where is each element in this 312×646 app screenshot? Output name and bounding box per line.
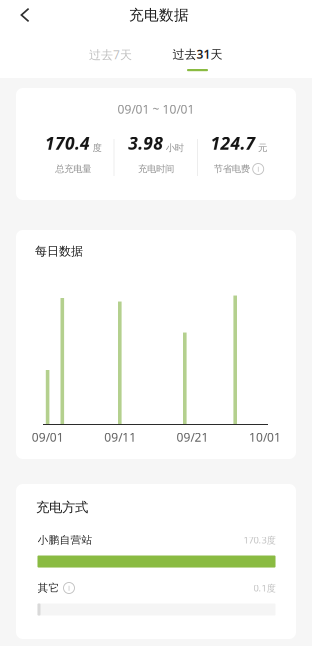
staticText: 充电数据 [129,6,189,24]
staticText: i [257,163,259,174]
staticText: 每日数据 [35,244,83,259]
staticText: 过去31天 [172,46,222,62]
staticText: 充电方式 [36,499,88,515]
staticText: 过去7天 [89,46,132,62]
staticText: 09/11 [104,429,136,445]
staticText: 124.7 [210,131,255,154]
staticText: 小时 [166,142,184,153]
staticText: 总充电量 [55,163,91,175]
button[interactable]: 过去7天 [77,41,143,67]
staticText: 其它 [37,581,59,594]
staticText: 09/01 [32,429,64,445]
staticText: 10/01 [249,429,281,445]
staticText: i [68,582,70,593]
staticText: 3.98 [128,131,163,154]
staticText: 元 [258,142,267,153]
button[interactable]: Back [6,0,44,30]
staticText: 170.3度 [243,534,275,546]
staticText: 小鹏自营站 [37,533,92,546]
staticText: 充电时间 [138,163,174,175]
staticText: 09/01 ~ 10/01 [117,101,194,117]
staticText: 09/21 [177,429,209,445]
staticText: 0.1度 [253,582,275,594]
staticText: 节省电费 [214,163,250,175]
button[interactable]: 过去31天 [164,45,230,79]
staticText: 度 [92,142,101,153]
staticText: 170.4 [45,131,90,154]
